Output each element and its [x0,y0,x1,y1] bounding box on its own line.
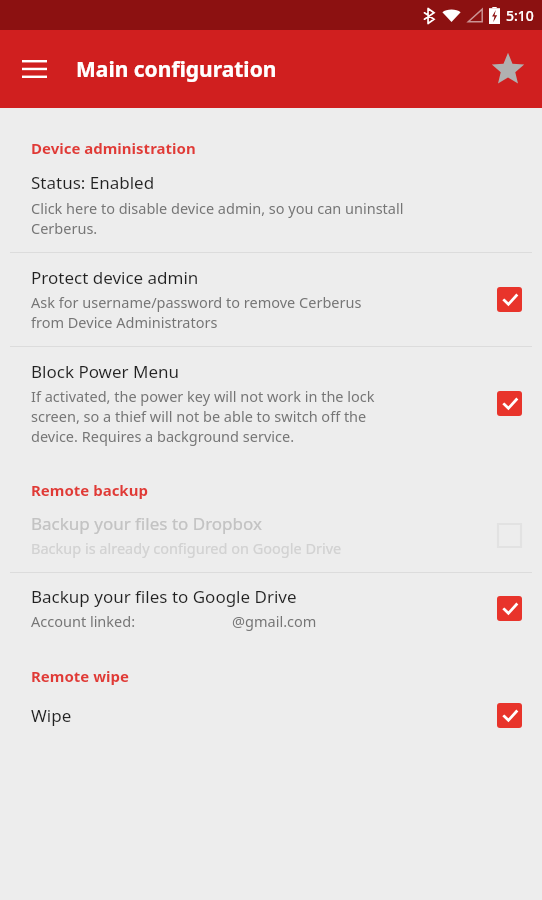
staticText: Device administration [31,138,196,158]
staticText: Wipe [31,704,496,727]
staticText: Account linked: [31,611,136,631]
button[interactable]: Block Power Menu [0,347,542,458]
staticText: Main configuration [76,55,484,84]
staticText: Click here to disable device admin, so y… [31,198,453,238]
staticText: Backup your files to Dropbox [31,512,262,535]
staticText: Backup your files to Google Drive [31,585,297,608]
staticText: If activated, the power key will not wor… [31,386,390,446]
button[interactable]: Protect device admin [0,253,542,346]
staticText: @gmail.com [232,611,317,631]
button[interactable]: Backup your files to Google Drive [0,573,542,643]
button[interactable]: Backup your files to Dropbox [0,504,542,572]
staticText: Block Power Menu [31,360,180,383]
button[interactable]: Open navigation drawer [8,43,60,95]
staticText: 5:10 [506,6,534,25]
staticText: Remote wipe [31,666,129,686]
button[interactable]: Wipe [0,690,542,740]
button[interactable]: Status: Enabled [0,162,542,252]
staticText: Backup is already configured on Google D… [31,538,395,558]
staticText: Ask for username/password to remove Cerb… [31,292,395,332]
button[interactable]: Favorite [484,45,532,93]
staticText: Remote backup [31,480,148,500]
staticText: Status: Enabled [31,171,155,194]
staticText: Protect device admin [31,266,199,289]
